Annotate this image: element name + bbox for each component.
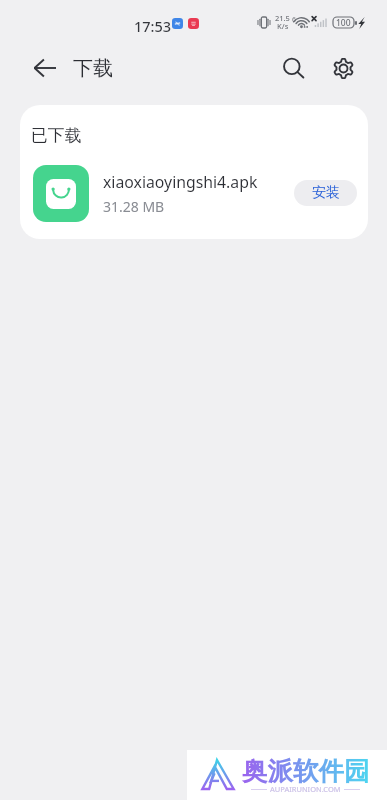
staticText: K/s xyxy=(277,21,289,31)
staticText: 奥派软件园 xyxy=(242,755,370,787)
button[interactable]: Settings xyxy=(321,46,365,90)
button[interactable]: Back xyxy=(22,46,67,90)
staticText: 安装 xyxy=(312,184,340,202)
staticText: xiaoxiaoyingshi4.apk xyxy=(103,171,258,193)
staticText: 已下载 xyxy=(31,125,82,146)
staticText: 6 xyxy=(292,15,297,25)
staticText: 下载 xyxy=(73,56,113,81)
button[interactable]: Search xyxy=(271,46,315,90)
button[interactable]: xiaoxiaoyingshi4.apk xyxy=(20,158,368,228)
staticText: 17:53 xyxy=(134,16,172,36)
staticText: AUPAIRUNION.COM xyxy=(270,784,341,794)
staticText: 31.28 MB xyxy=(103,197,165,216)
staticText: 100 xyxy=(336,17,351,28)
button[interactable]: 安装 xyxy=(294,180,357,206)
staticText: 21.5 xyxy=(275,13,290,23)
